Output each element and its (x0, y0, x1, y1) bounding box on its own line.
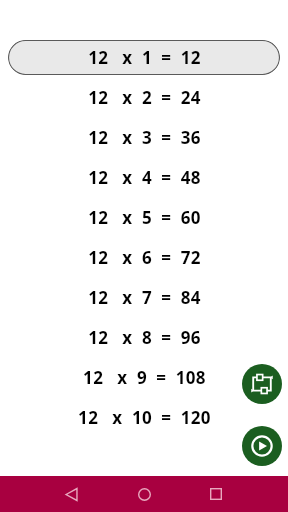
staticText: 12 x 4 = 48 (88, 166, 201, 189)
button[interactable]: Play (242, 426, 282, 466)
staticText: 12 x 9 = 108 (83, 366, 206, 389)
staticText: 12 x 3 = 36 (88, 126, 201, 149)
staticText: 12 x 5 = 60 (88, 206, 201, 229)
staticText: 12 x 6 = 72 (88, 246, 201, 269)
staticText: 12 x 8 = 96 (88, 326, 201, 349)
staticText: 12 x 7 = 84 (88, 286, 201, 309)
button[interactable]: Swap order (242, 364, 282, 404)
staticText: 12 x 1 = 12 (88, 46, 201, 69)
button[interactable]: 12 x 2 = 24 (8, 79, 280, 115)
button[interactable]: 12 x 10 = 120 (8, 399, 280, 435)
button[interactable]: 12 x 1 = 12 (8, 39, 280, 75)
button[interactable]: Back (47, 476, 95, 512)
button[interactable]: 12 x 6 = 72 (8, 239, 280, 275)
button[interactable]: 12 x 8 = 96 (8, 319, 280, 355)
button[interactable]: 12 x 5 = 60 (8, 199, 280, 235)
button[interactable]: 12 x 4 = 48 (8, 159, 280, 195)
button[interactable]: 12 x 9 = 108 (8, 359, 280, 395)
button[interactable]: Home (120, 476, 168, 512)
button[interactable]: 12 x 7 = 84 (8, 279, 280, 315)
staticText: 12 x 2 = 24 (88, 86, 201, 109)
button[interactable]: Recent apps (192, 476, 240, 512)
staticText: 12 x 10 = 120 (78, 406, 211, 429)
button[interactable] (8, 40, 280, 75)
button[interactable]: 12 x 3 = 36 (8, 119, 280, 155)
